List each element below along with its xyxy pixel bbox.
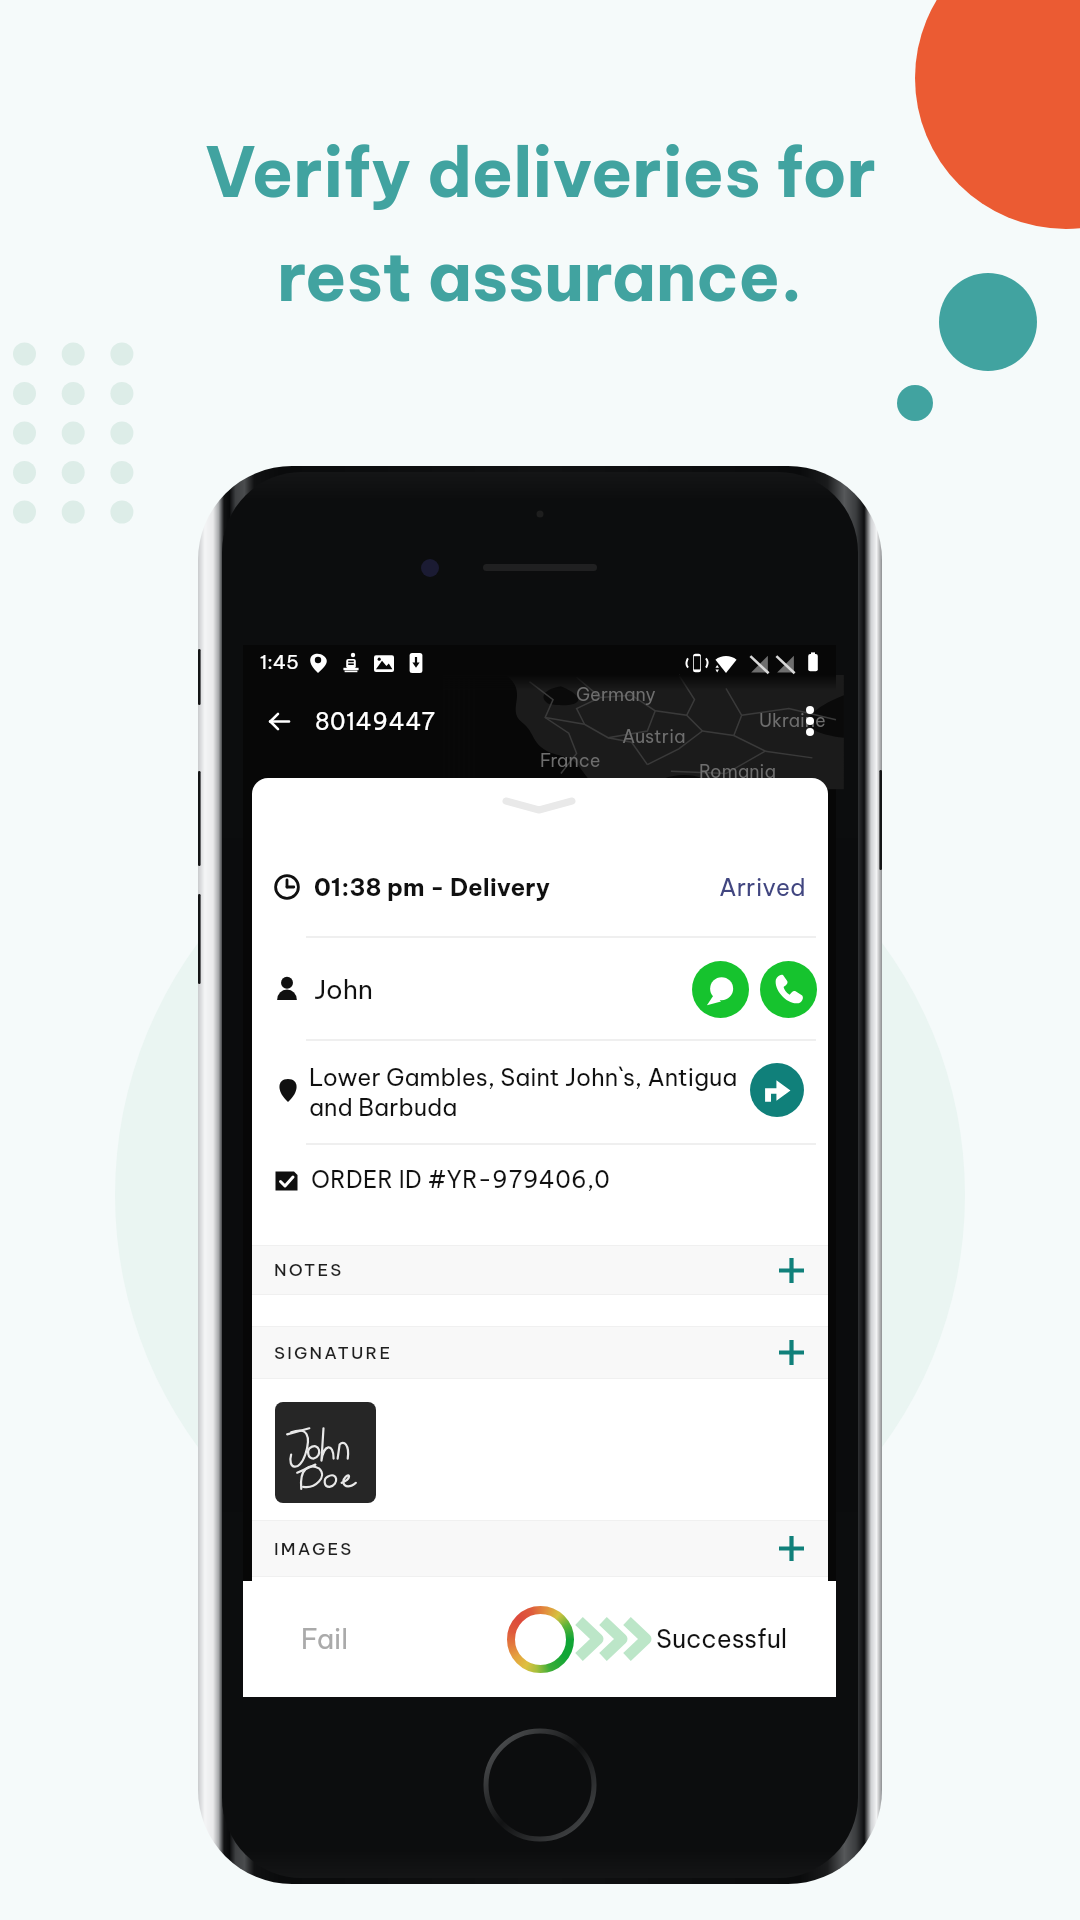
button[interactable]: 01:38 pm - Delivery — [274, 858, 806, 916]
button[interactable]: Navigate — [750, 1063, 804, 1117]
button[interactable]: Call — [760, 961, 817, 1018]
staticText: Lower Gambles, Saint John`s, Antigua and… — [309, 1062, 759, 1122]
staticText: Austria — [622, 725, 686, 748]
staticText: rest assurance. — [277, 233, 803, 319]
staticText: John — [314, 973, 373, 1006]
button[interactable]: NOTES — [252, 1245, 828, 1295]
staticText: Ukraine — [759, 709, 826, 732]
button[interactable]: More options — [788, 699, 832, 743]
staticText: SIGNATURE — [274, 1342, 393, 1364]
staticText: 80149447 — [315, 707, 436, 736]
button[interactable]: Fail — [243, 1581, 407, 1697]
staticText: Verify deliveries for — [205, 129, 876, 215]
staticText: ORDER ID #YR-979406,0 — [311, 1165, 611, 1194]
button[interactable]: Successful — [507, 1581, 788, 1697]
button[interactable]: ORDER ID #YR-979406,0 — [274, 1152, 806, 1206]
staticText: France — [540, 749, 601, 772]
button[interactable]: Back — [257, 699, 301, 743]
staticText: 01:38 pm - Delivery — [314, 872, 551, 902]
staticText: 1:45 — [260, 650, 299, 674]
staticText: NOTES — [274, 1259, 344, 1281]
staticText: Fail — [301, 1622, 349, 1656]
button[interactable]: John — [274, 958, 817, 1020]
staticText: Arrived — [719, 872, 806, 902]
staticText: Germany — [576, 683, 656, 706]
button[interactable]: Lower Gambles, Saint John`s, Antigua and… — [252, 1045, 828, 1135]
button[interactable] — [275, 1402, 376, 1503]
button[interactable]: IMAGES — [252, 1520, 828, 1577]
staticText: IMAGES — [274, 1538, 354, 1560]
button[interactable]: Message — [692, 961, 749, 1018]
button[interactable]: SIGNATURE — [252, 1326, 828, 1379]
staticText: Successful — [656, 1623, 788, 1655]
staticText: Romania — [699, 760, 776, 783]
